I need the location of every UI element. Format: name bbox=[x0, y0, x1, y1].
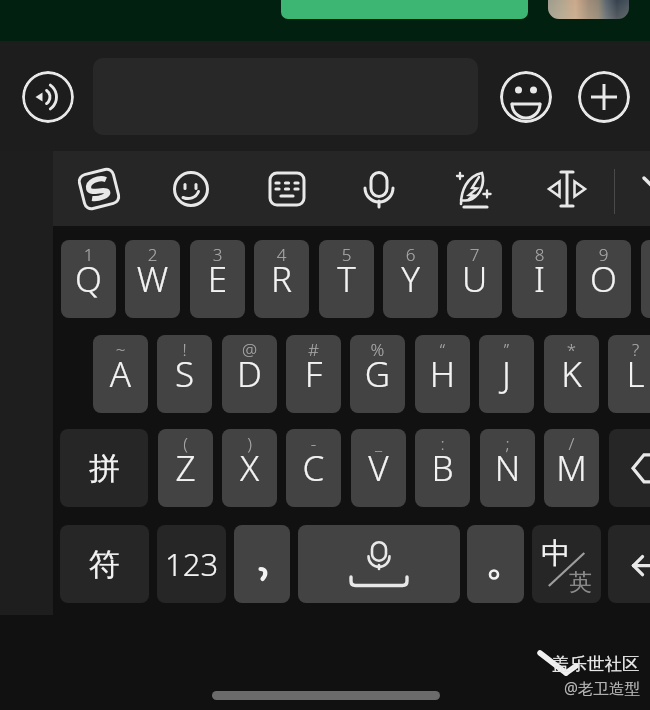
button[interactable]: ; bbox=[480, 429, 535, 507]
staticText: 2 bbox=[125, 243, 180, 266]
button[interactable]: 0 bbox=[641, 240, 650, 318]
staticText: J bbox=[479, 350, 534, 398]
staticText: N bbox=[480, 444, 535, 492]
button[interactable]: Move cursor bbox=[543, 165, 591, 213]
staticText: 123 bbox=[165, 543, 219, 585]
staticText: E bbox=[190, 255, 245, 303]
button[interactable]: 3 bbox=[190, 240, 245, 318]
staticText: _ bbox=[351, 432, 406, 455]
button[interactable]: / bbox=[544, 429, 599, 507]
staticText: S bbox=[157, 350, 212, 398]
staticText: K bbox=[544, 350, 599, 398]
button[interactable]: * bbox=[544, 335, 599, 413]
button[interactable]: 4 bbox=[254, 240, 309, 318]
staticText: V bbox=[351, 444, 406, 492]
staticText: / bbox=[544, 432, 599, 455]
staticText: 3 bbox=[190, 243, 245, 266]
button[interactable]: Enter bbox=[608, 525, 650, 603]
button[interactable]: : bbox=[415, 429, 470, 507]
staticText: B bbox=[415, 444, 470, 492]
staticText: ( bbox=[158, 432, 213, 455]
staticText: R bbox=[254, 255, 309, 303]
button[interactable]: - bbox=[286, 429, 341, 507]
staticText: ~ bbox=[93, 338, 148, 361]
button[interactable]: 1 bbox=[61, 240, 116, 318]
staticText: C bbox=[286, 444, 341, 492]
button[interactable]: 符 bbox=[60, 525, 149, 603]
staticText: Y bbox=[383, 255, 438, 303]
staticText: F bbox=[286, 350, 341, 398]
staticText: ; bbox=[480, 432, 535, 455]
staticText: “ bbox=[415, 338, 470, 361]
button[interactable]: 7 bbox=[447, 240, 502, 318]
staticText: Z bbox=[158, 444, 213, 492]
button[interactable]: More bbox=[578, 71, 630, 123]
staticText: 拼 bbox=[89, 449, 120, 488]
button[interactable]: ? bbox=[608, 335, 650, 413]
staticText: 1 bbox=[61, 243, 116, 266]
staticText: : bbox=[415, 432, 470, 455]
button[interactable]: Voice bbox=[355, 165, 403, 213]
staticText: D bbox=[222, 350, 277, 398]
staticText: * bbox=[544, 338, 599, 361]
button[interactable]: Period bbox=[467, 525, 524, 603]
staticText: 英 bbox=[569, 568, 592, 597]
button[interactable]: % bbox=[350, 335, 405, 413]
staticText: X bbox=[222, 444, 277, 492]
button[interactable]: Comma bbox=[234, 525, 290, 603]
staticText: 盖乐世社区 bbox=[552, 653, 640, 675]
button[interactable]: Space bbox=[298, 525, 460, 603]
staticText: 0 bbox=[641, 243, 650, 266]
staticText: % bbox=[350, 338, 405, 361]
button[interactable]: Handwriting bbox=[449, 165, 497, 213]
staticText: U bbox=[447, 255, 502, 303]
staticText: ? bbox=[608, 338, 650, 361]
button[interactable]: _ bbox=[351, 429, 406, 507]
button[interactable]: Voice input bbox=[22, 71, 74, 123]
button[interactable]: @ bbox=[222, 335, 277, 413]
button[interactable]: ~ bbox=[93, 335, 148, 413]
button[interactable]: 5 bbox=[319, 240, 374, 318]
staticText: O bbox=[576, 255, 631, 303]
staticText: Q bbox=[61, 255, 116, 303]
staticText: ! bbox=[157, 338, 212, 361]
button[interactable]: Keyboard layout bbox=[263, 165, 311, 213]
staticText: M bbox=[544, 444, 599, 492]
button[interactable]: ” bbox=[479, 335, 534, 413]
staticText: 中 bbox=[541, 535, 570, 572]
staticText: 符 bbox=[89, 545, 120, 584]
button[interactable]: “ bbox=[415, 335, 470, 413]
staticText: T bbox=[319, 255, 374, 303]
button[interactable]: 8 bbox=[512, 240, 567, 318]
button[interactable]: Chinese English toggle bbox=[532, 525, 601, 603]
button[interactable]: 6 bbox=[383, 240, 438, 318]
button[interactable]: Emoji bbox=[500, 71, 552, 123]
staticText: 8 bbox=[512, 243, 567, 266]
button[interactable]: ) bbox=[222, 429, 277, 507]
staticText: 5 bbox=[319, 243, 374, 266]
staticText: ) bbox=[222, 432, 277, 455]
button[interactable]: 2 bbox=[125, 240, 180, 318]
button[interactable]: ( bbox=[158, 429, 213, 507]
staticText: 9 bbox=[576, 243, 631, 266]
staticText: 4 bbox=[254, 243, 309, 266]
staticText: - bbox=[286, 432, 341, 455]
button[interactable]: 拼 bbox=[60, 429, 148, 507]
staticText: 6 bbox=[383, 243, 438, 266]
button[interactable]: 123 bbox=[157, 525, 226, 603]
button[interactable]: Sogou bbox=[75, 165, 123, 213]
staticText: A bbox=[93, 350, 148, 398]
staticText: L bbox=[608, 350, 650, 398]
button[interactable]: 9 bbox=[576, 240, 631, 318]
button[interactable]: Emoticons bbox=[167, 165, 215, 213]
staticText: # bbox=[286, 338, 341, 361]
staticText: I bbox=[512, 255, 567, 303]
staticText: @老卫造型 bbox=[564, 677, 640, 698]
button[interactable]: ! bbox=[157, 335, 212, 413]
staticText: @ bbox=[222, 338, 277, 361]
button[interactable]: Backspace bbox=[609, 429, 650, 507]
button[interactable]: # bbox=[286, 335, 341, 413]
staticText: 7 bbox=[447, 243, 502, 266]
staticText: G bbox=[350, 350, 405, 398]
